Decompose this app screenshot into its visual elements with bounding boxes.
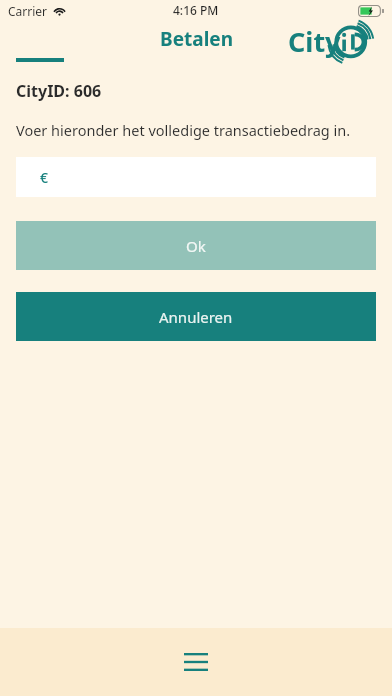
button[interactable]: € — [16, 157, 376, 197]
staticText: Carrier — [8, 3, 48, 19]
staticText: Voer hieronder het volledige transactieb… — [16, 120, 351, 140]
staticText: Annuleren — [159, 307, 233, 327]
button[interactable]: Annuleren — [16, 292, 376, 341]
staticText: CityID: 606 — [16, 80, 102, 102]
button[interactable]: Ok — [16, 221, 376, 270]
button[interactable]: Menu — [0, 628, 392, 696]
staticText: City — [288, 23, 341, 60]
staticText: 4:16 PM — [173, 2, 219, 18]
staticText: Ok — [186, 236, 206, 256]
staticText: Betalen — [160, 26, 233, 52]
staticText: € — [40, 168, 49, 187]
